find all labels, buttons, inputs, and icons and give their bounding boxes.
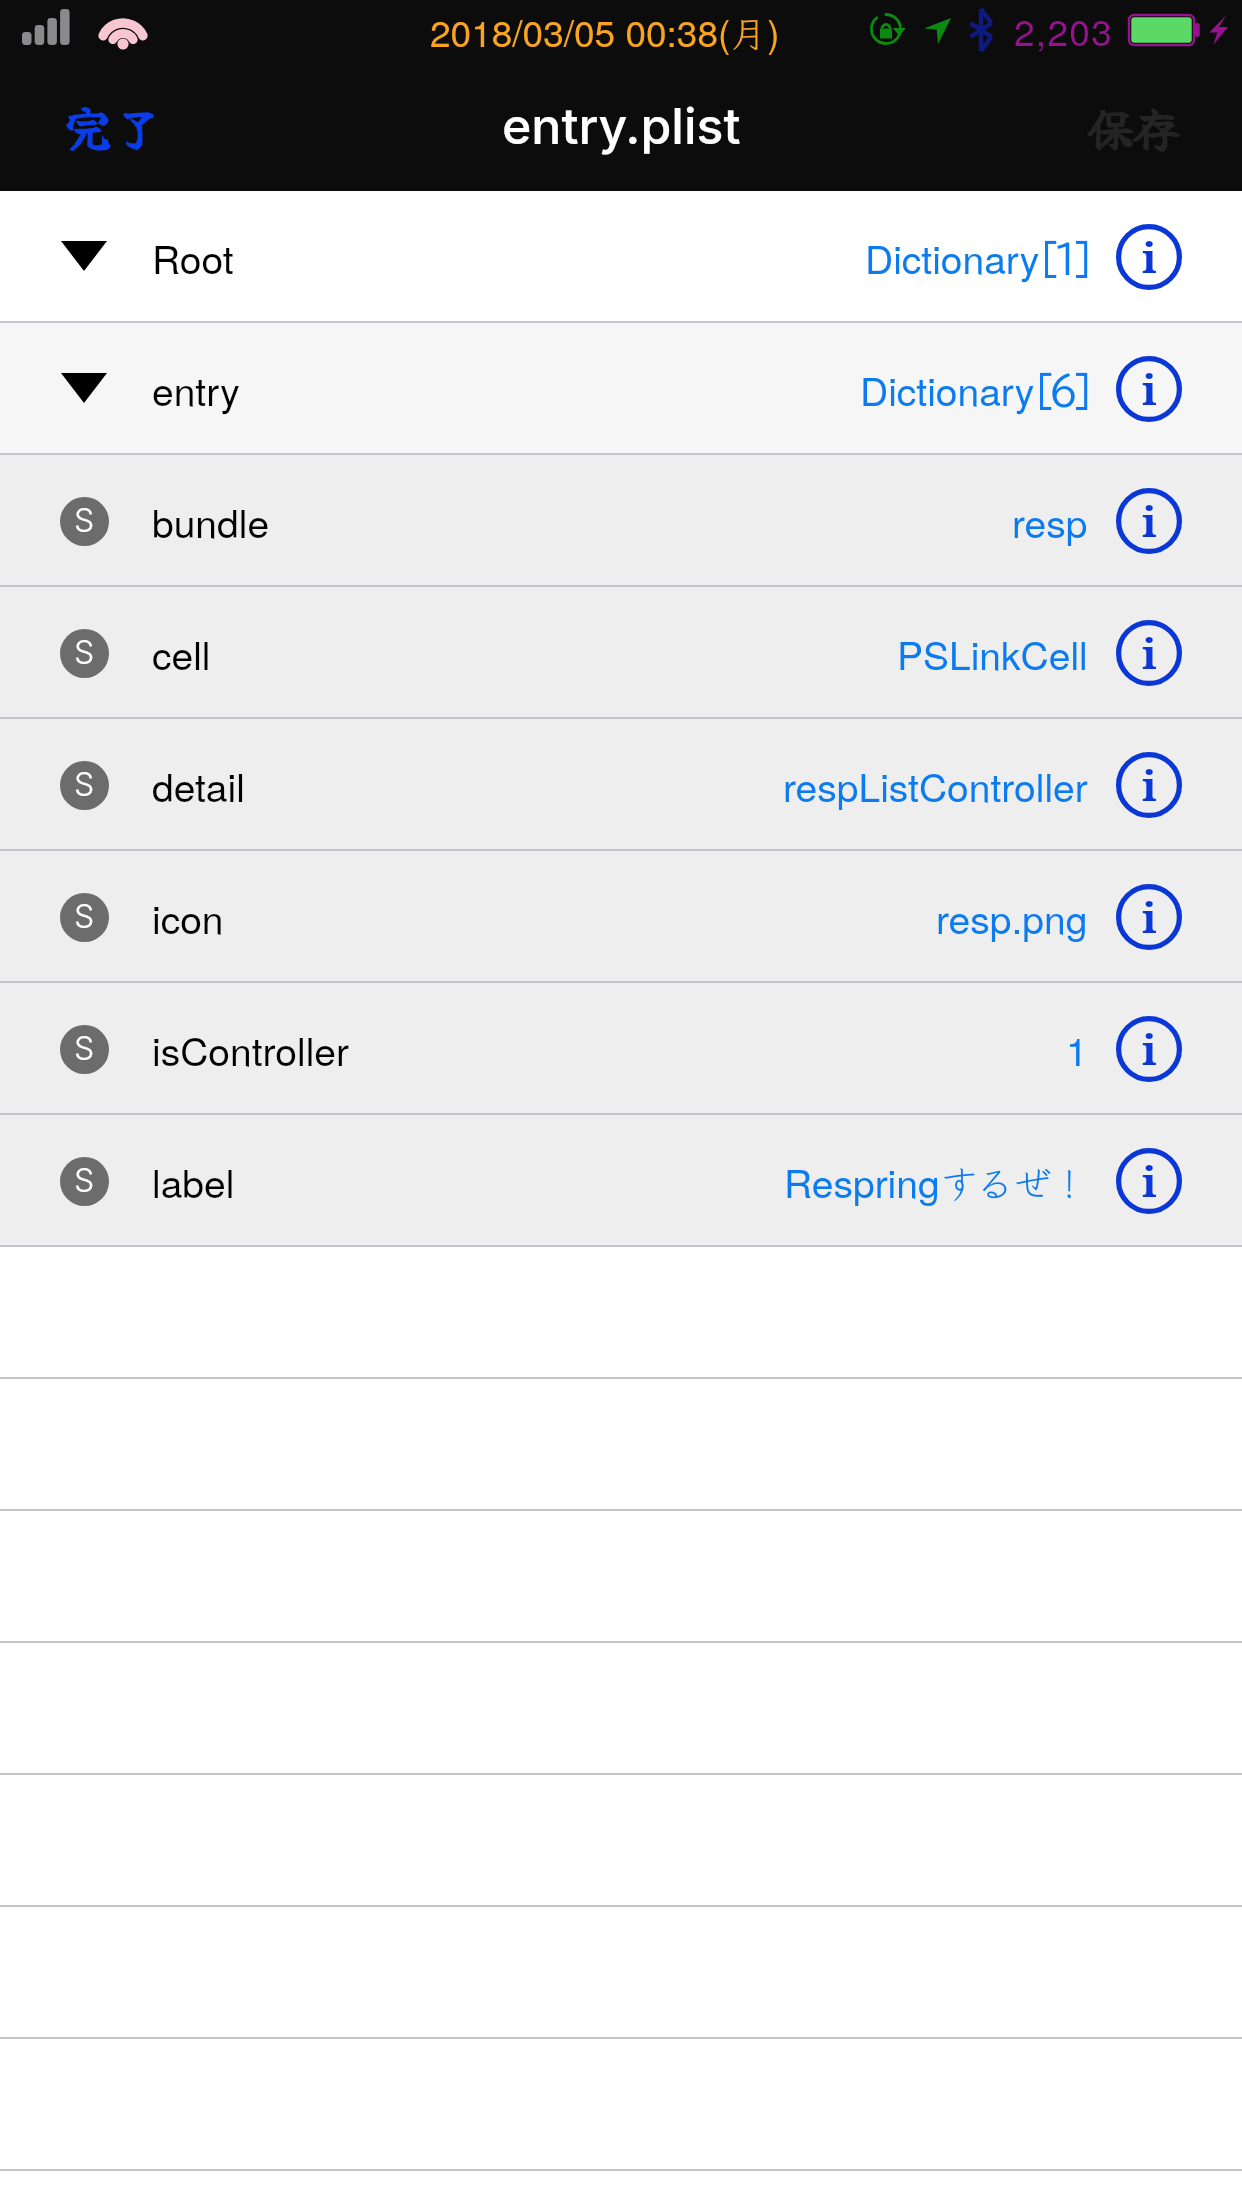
staticText: S — [74, 897, 95, 936]
button[interactable]: S — [0, 1115, 1242, 1247]
staticText: 保存 — [1087, 92, 1180, 160]
staticText: respListController — [783, 757, 1088, 813]
staticText: 2,203 — [1014, 4, 1114, 57]
staticText: PSLinkCell — [897, 625, 1088, 681]
staticText: i — [1142, 360, 1157, 417]
staticText: i — [1142, 1020, 1157, 1077]
staticText: entry — [152, 361, 240, 417]
staticText: entry.plist — [502, 96, 741, 156]
staticText: resp — [1012, 493, 1088, 549]
button[interactable]: Root — [0, 191, 1242, 323]
button[interactable]: S — [0, 455, 1242, 587]
button[interactable]: Info — [1116, 1148, 1182, 1214]
staticText: S — [74, 1161, 95, 1200]
staticText: S — [74, 501, 95, 540]
button[interactable]: entry — [0, 323, 1242, 455]
button[interactable]: S — [0, 719, 1242, 851]
button[interactable]: S — [0, 983, 1242, 1115]
button[interactable]: Info — [1116, 620, 1182, 686]
button[interactable]: Info — [1116, 356, 1182, 422]
staticText: 2018/03/05 00:38(月) — [430, 4, 780, 58]
staticText: icon — [152, 889, 224, 945]
staticText: resp.png — [936, 889, 1088, 945]
button[interactable]: Info — [1116, 224, 1182, 290]
staticText: isController — [152, 1021, 349, 1077]
staticText: S — [74, 633, 95, 672]
staticText: 完了 — [64, 91, 162, 161]
staticText: i — [1142, 492, 1157, 549]
button[interactable]: S — [0, 851, 1242, 983]
staticText: Respringするぜ！ — [784, 1153, 1088, 1209]
staticText: Dictionary［6］ — [860, 361, 1088, 417]
staticText: label — [152, 1153, 235, 1209]
staticText: detail — [152, 757, 245, 813]
staticText: 1 — [1066, 1021, 1088, 1077]
staticText: i — [1142, 1152, 1157, 1209]
button[interactable]: Info — [1116, 488, 1182, 554]
staticText: Root — [152, 229, 234, 285]
staticText: i — [1142, 624, 1157, 681]
staticText: i — [1142, 756, 1157, 813]
button[interactable]: 完了 — [0, 71, 192, 181]
staticText: i — [1142, 228, 1157, 285]
staticText: S — [74, 765, 95, 804]
button[interactable]: S — [0, 587, 1242, 719]
staticText: Dictionary［1］ — [865, 229, 1088, 285]
staticText: cell — [152, 625, 211, 681]
button[interactable]: 保存 — [1057, 72, 1242, 180]
button[interactable]: Info — [1116, 752, 1182, 818]
button[interactable]: Info — [1116, 1016, 1182, 1082]
staticText: i — [1142, 888, 1157, 945]
button[interactable]: Info — [1116, 884, 1182, 950]
staticText: S — [74, 1029, 95, 1068]
staticText: bundle — [152, 493, 270, 549]
